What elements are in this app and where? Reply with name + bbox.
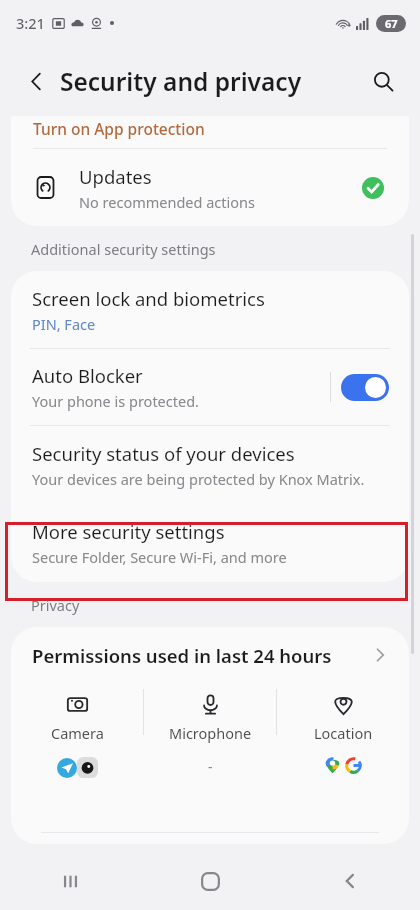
staticText: Additional security settings bbox=[31, 239, 216, 259]
button[interactable]: Security status of your devices bbox=[11, 426, 409, 503]
staticText: No recommended actions bbox=[79, 192, 255, 212]
staticText: Permissions used in last 24 hours bbox=[32, 643, 371, 668]
staticText: 67 bbox=[385, 16, 398, 31]
staticText: Camera bbox=[51, 723, 104, 743]
staticText: - bbox=[208, 757, 213, 776]
staticText: Turn on App protection bbox=[33, 118, 205, 139]
staticText: Microphone bbox=[169, 723, 252, 743]
button[interactable]: Back bbox=[280, 852, 420, 910]
staticText: Security status of your devices bbox=[32, 441, 295, 466]
button[interactable]: Home bbox=[140, 852, 280, 910]
button[interactable]: More security settings bbox=[11, 503, 409, 582]
staticText: More security settings bbox=[32, 519, 225, 544]
button[interactable]: Updates bbox=[11, 149, 409, 226]
staticText: Location bbox=[314, 723, 373, 743]
button[interactable]: Permissions used in last 24 hours bbox=[11, 627, 409, 683]
staticText: Security and privacy bbox=[60, 65, 302, 98]
button[interactable]: Search bbox=[364, 62, 402, 100]
staticText: Auto Blocker bbox=[32, 363, 143, 388]
button[interactable]: Screen lock and biometrics bbox=[11, 271, 409, 348]
staticText: Screen lock and biometrics bbox=[32, 286, 265, 311]
button[interactable]: Recents bbox=[0, 852, 140, 910]
staticText: PIN, Face bbox=[32, 314, 96, 334]
button[interactable]: Camera bbox=[11, 683, 143, 791]
staticText: Your phone is protected. bbox=[32, 391, 199, 411]
staticText: Updates bbox=[79, 164, 152, 189]
staticText: Your devices are being protected by Knox… bbox=[32, 469, 365, 489]
button[interactable]: Auto Blocker toggle bbox=[341, 374, 389, 401]
staticText: 3:21 bbox=[16, 13, 45, 33]
staticText: Privacy bbox=[31, 595, 80, 615]
staticText: Secure Folder, Secure Wi-Fi, and more bbox=[32, 547, 287, 567]
button[interactable]: Back bbox=[18, 63, 54, 99]
button[interactable]: Auto Blocker bbox=[11, 349, 409, 425]
button[interactable]: Microphone bbox=[144, 683, 276, 791]
button[interactable]: Location bbox=[277, 683, 409, 791]
